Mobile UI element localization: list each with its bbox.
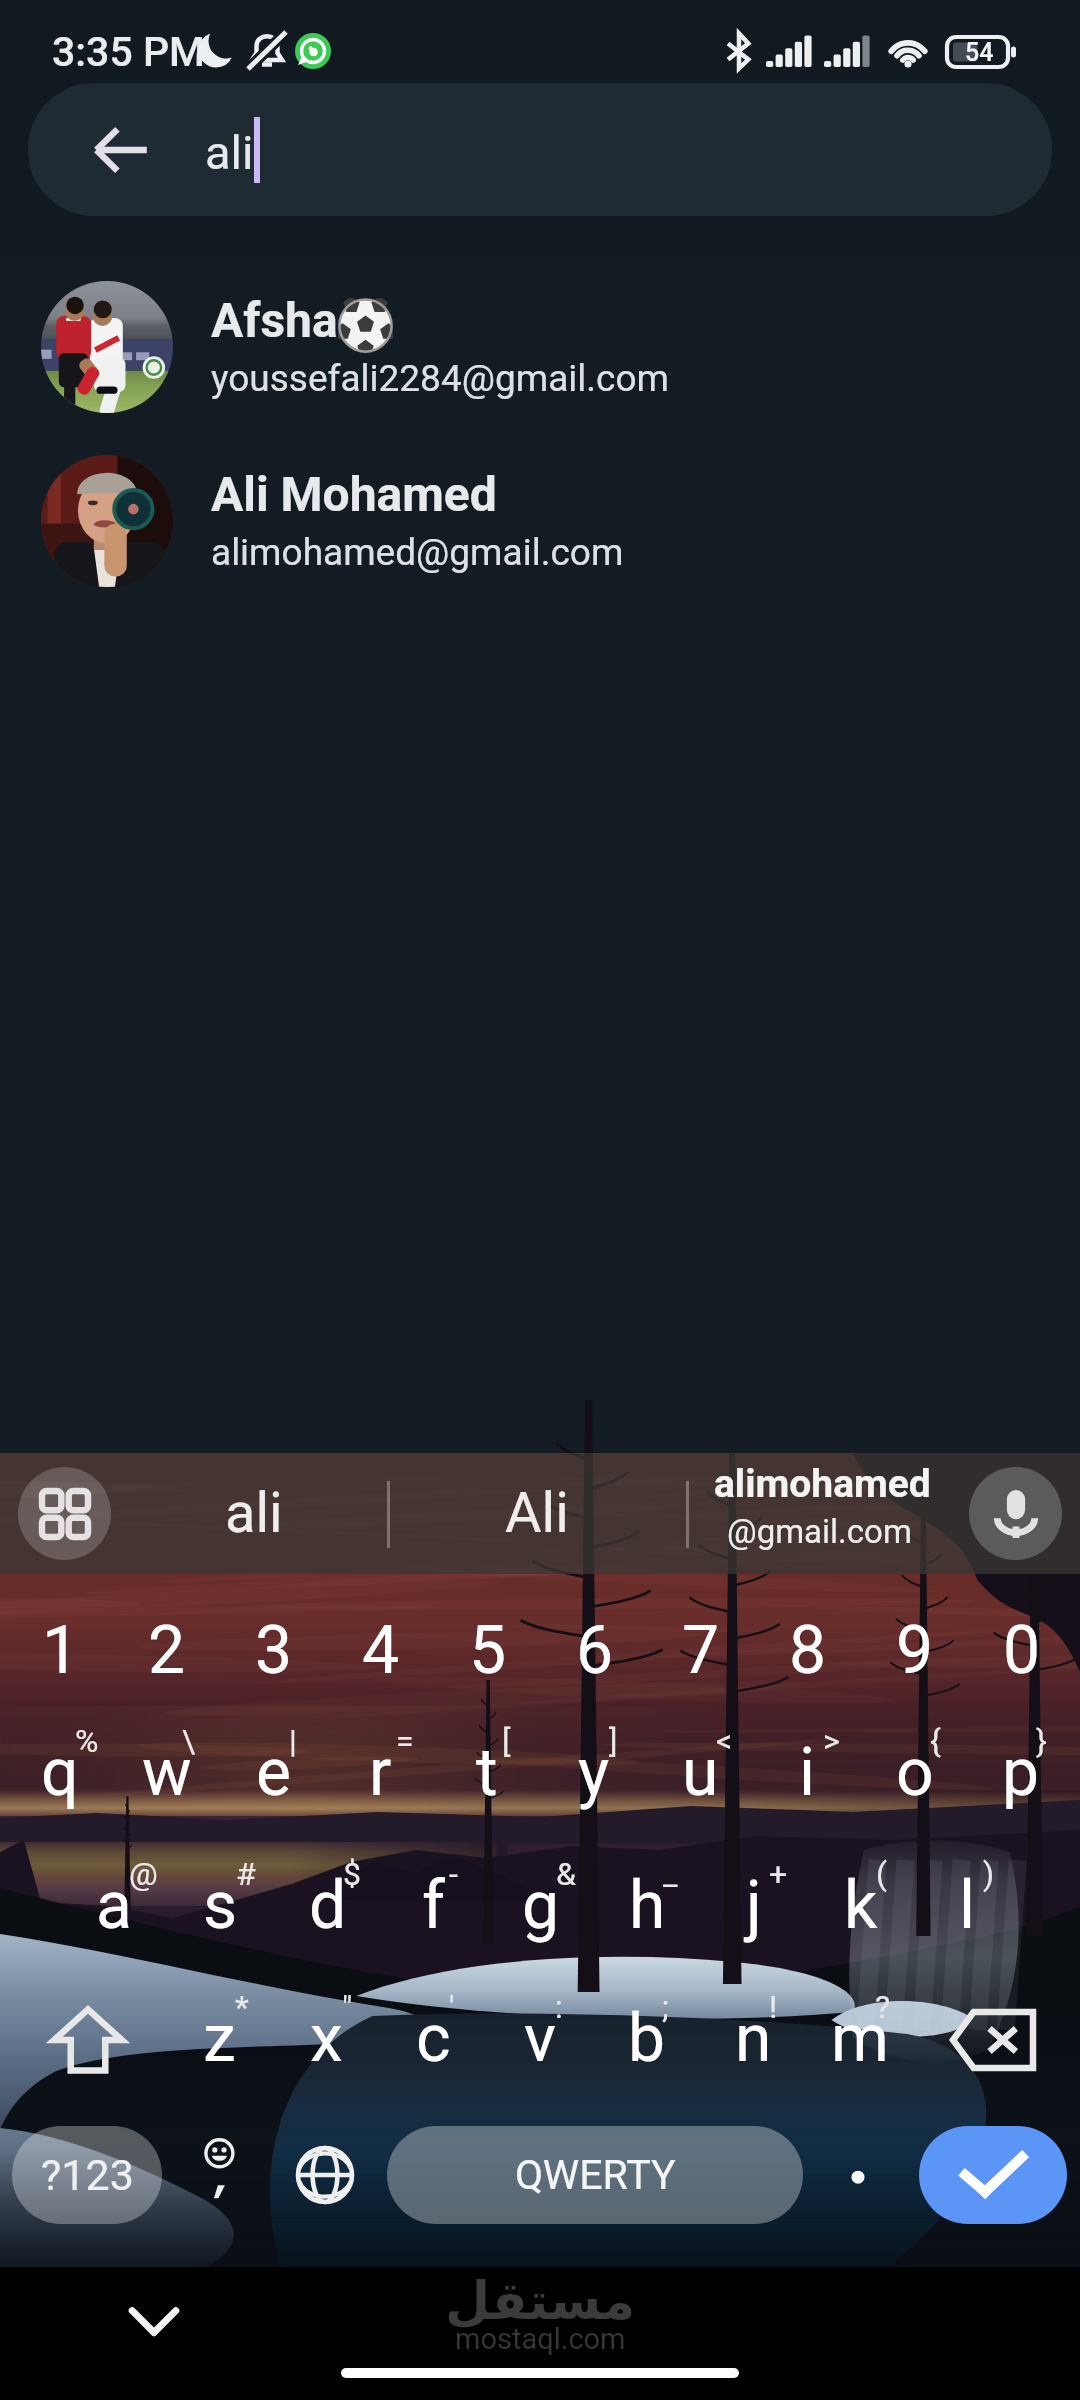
staticText: QWERTY (515, 2151, 676, 2199)
button[interactable]: p (967, 1706, 1074, 1839)
staticText: 7 (682, 1612, 720, 1689)
button[interactable]: Shift (20, 1975, 155, 2105)
button[interactable]: Back (28, 83, 1052, 216)
staticText: s (203, 1867, 238, 1944)
staticText: \ (182, 1722, 196, 1760)
button[interactable]: Back (66, 83, 176, 216)
staticText: u (682, 1734, 719, 1811)
button[interactable]: 7 (647, 1584, 754, 1717)
button[interactable]: s (167, 1839, 274, 1972)
staticText: - (449, 1855, 458, 1893)
button[interactable]: 9 (861, 1584, 968, 1717)
button[interactable]: Change language (280, 2126, 370, 2224)
button[interactable]: j (700, 1839, 807, 1972)
staticText: % (75, 1722, 99, 1760)
button[interactable]: o (861, 1706, 968, 1839)
staticText: 1 (42, 1612, 80, 1689)
staticText: p (1002, 1734, 1040, 1811)
staticText: 8 (789, 1612, 827, 1689)
button[interactable]: k (807, 1839, 914, 1972)
button[interactable]: q (6, 1706, 113, 1839)
staticText: i (799, 1734, 816, 1811)
button[interactable]: 6 (541, 1584, 648, 1717)
staticText: m (831, 2000, 889, 2077)
staticText: } (1036, 1722, 1047, 1760)
button[interactable]: Emoji (175, 2126, 265, 2224)
button[interactable]: 8 (754, 1584, 861, 1717)
staticText: < (716, 1722, 733, 1760)
staticText: y (578, 1734, 610, 1811)
staticText: + (769, 1855, 788, 1893)
button[interactable]: f (380, 1839, 487, 1972)
button[interactable]: 5 (434, 1584, 541, 1717)
button[interactable]: Ali (427, 1453, 647, 1574)
button[interactable]: z (166, 1972, 273, 2105)
staticText: { (930, 1722, 941, 1760)
button[interactable]: alimohamed (700, 1453, 946, 1574)
button[interactable]: e (220, 1706, 327, 1839)
staticText: b (628, 2000, 666, 2077)
staticText: = (396, 1722, 414, 1760)
button[interactable]: w (113, 1706, 220, 1839)
button[interactable]: d (274, 1839, 381, 1972)
button[interactable]: Enter (919, 2126, 1067, 2224)
button[interactable]: 1 (7, 1584, 114, 1717)
button[interactable]: v (486, 1972, 593, 2105)
button[interactable]: i (754, 1706, 861, 1839)
button[interactable]: g (487, 1839, 594, 1972)
staticText: ? (875, 1988, 891, 2026)
staticText: ! (769, 1988, 778, 2026)
button[interactable]: 2 (113, 1584, 220, 1717)
button[interactable]: QWERTY (387, 2126, 803, 2224)
button[interactable]: x (273, 1972, 380, 2105)
staticText: 0 (1003, 1612, 1041, 1689)
button[interactable]: 0 (968, 1584, 1075, 1717)
staticText: | (289, 1722, 297, 1760)
staticText: Afsha (211, 292, 338, 348)
staticText: ] (609, 1722, 618, 1760)
staticText: z (203, 2000, 236, 2077)
button[interactable]: ali (144, 1453, 364, 1574)
staticText: 3:35 PM (52, 28, 205, 76)
button[interactable]: n (700, 1972, 807, 2105)
staticText: @gmail.com (727, 1512, 912, 1551)
staticText: h (629, 1867, 666, 1944)
button[interactable]: Voice input (969, 1467, 1062, 1560)
button[interactable]: u (647, 1706, 754, 1839)
button[interactable]: l (914, 1839, 1021, 1972)
staticText: 3 (255, 1612, 293, 1689)
staticText: ; (662, 1988, 669, 2026)
staticText: alimohamed@gmail.com (211, 531, 624, 574)
button[interactable]: Backspace (925, 1975, 1060, 2105)
staticText: : (555, 1988, 563, 2026)
staticText: ' (449, 1988, 455, 2026)
button[interactable]: Afsha (0, 260, 1080, 434)
staticText: 54 (965, 38, 994, 67)
staticText: $ (343, 1855, 361, 1893)
button[interactable]: 3 (220, 1584, 327, 1717)
staticText: ali (225, 1480, 283, 1546)
staticText: ( (876, 1855, 887, 1893)
staticText: Ali Mohamed (211, 466, 497, 522)
button[interactable]: y (540, 1706, 647, 1839)
button[interactable]: b (593, 1972, 700, 2105)
staticText: a (96, 1867, 132, 1944)
button[interactable]: h (594, 1839, 701, 1972)
staticText: مستقل (445, 2271, 636, 2332)
staticText: @ (129, 1855, 158, 1893)
button[interactable]: Hide keyboard (112, 2279, 196, 2363)
staticText: alimohamed (714, 1461, 931, 1507)
button[interactable]: Keyboard options (18, 1467, 111, 1560)
button[interactable]: Ali Mohamed (0, 434, 1080, 608)
button[interactable]: ?123 (12, 2126, 162, 2224)
button[interactable]: r (327, 1706, 434, 1839)
button[interactable]: a (60, 1839, 167, 1972)
button[interactable]: c (380, 1972, 487, 2105)
button[interactable]: 4 (327, 1584, 434, 1717)
staticText: 2 (148, 1612, 186, 1689)
button[interactable]: t (433, 1706, 540, 1839)
button[interactable] (813, 2126, 903, 2224)
button[interactable]: m (806, 1972, 913, 2105)
staticText: 5 (469, 1612, 507, 1689)
staticText: mostaql.com (455, 2322, 626, 2356)
